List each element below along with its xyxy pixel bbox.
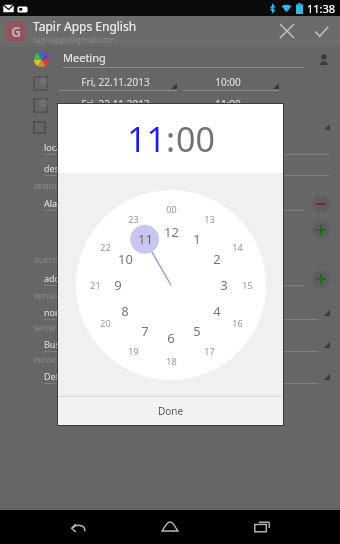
staticText: All day [57, 120, 89, 134]
staticText: GUESTS [34, 256, 60, 266]
button[interactable]: 13 [198, 208, 220, 230]
staticText: 11 [138, 230, 153, 248]
staticText: none [44, 306, 66, 318]
staticText: REMINDERS [34, 182, 74, 192]
button[interactable]: Meeting [0, 46, 340, 72]
button[interactable]: none [0, 304, 340, 322]
staticText: 19 [128, 345, 139, 357]
button[interactable]: Add guest [314, 49, 334, 69]
staticText: tapirapps@gmail.com [33, 34, 116, 45]
button[interactable]: 14 [226, 236, 248, 258]
button[interactable]: 1 [186, 228, 208, 250]
staticText: 21 [90, 279, 101, 291]
button[interactable]: 00 [160, 198, 182, 220]
staticText: 00 [176, 116, 215, 162]
staticText: 10 [118, 250, 133, 268]
staticText: 6 [167, 329, 175, 347]
button[interactable]: Fri, 22.11.2013 [59, 75, 177, 91]
button[interactable]: location [0, 138, 340, 158]
staticText: 2 [213, 250, 221, 268]
staticText: Fri, 22.11.2013 [81, 97, 150, 111]
button[interactable]: 19 [122, 340, 144, 362]
button[interactable]: Save [306, 16, 336, 46]
staticText: 15 [242, 279, 253, 291]
staticText: Busy [44, 338, 65, 350]
button[interactable]: 9 [107, 274, 129, 296]
button[interactable]: Add guest [312, 270, 330, 288]
staticText: 22 [100, 241, 111, 253]
button[interactable]: Busy [0, 336, 340, 354]
button[interactable]: 20 [94, 312, 116, 334]
staticText: Fri, 22.11.2013 [81, 75, 150, 89]
staticText: 11:38 [307, 1, 336, 16]
button[interactable]: 12 [160, 221, 182, 243]
button[interactable]: 00 [176, 116, 215, 162]
button[interactable]: All day [0, 116, 340, 138]
button[interactable]: 6 [160, 327, 182, 349]
button[interactable]: Recent apps [240, 510, 284, 544]
button[interactable]: 7 [134, 320, 156, 342]
staticText: 20 [100, 317, 111, 329]
staticText: description [44, 162, 92, 174]
staticText: 1 [193, 230, 201, 248]
button[interactable]: 4 [206, 300, 228, 322]
button[interactable]: 21 [84, 274, 106, 296]
staticText: Tapir Apps English [33, 18, 137, 34]
button[interactable]: 11 [134, 228, 156, 250]
staticText: 14 [232, 241, 243, 253]
staticText: 8 [121, 302, 129, 320]
button[interactable]: Done [58, 397, 283, 425]
button[interactable]: 23 [122, 208, 144, 230]
staticText: SHOW ME AS [34, 324, 78, 334]
button[interactable]: Add reminder [312, 221, 330, 239]
button[interactable]: 22 [94, 236, 116, 258]
button[interactable]: 11:00 [183, 97, 279, 113]
staticText: 9 [114, 276, 122, 294]
staticText: G [11, 22, 22, 41]
staticText: Default [44, 370, 75, 382]
staticText: 00 [166, 203, 177, 215]
button[interactable]: 17 [198, 340, 220, 362]
staticText: 3 [220, 276, 228, 294]
button[interactable]: 16 [226, 312, 248, 334]
staticText: 13 [204, 213, 215, 225]
button[interactable]: 18 [160, 350, 182, 372]
button[interactable]: 2 [206, 248, 228, 270]
staticText: 16 [232, 317, 243, 329]
staticText: 10:00 [215, 75, 241, 89]
button[interactable]: Fri, 22.11.2013 [59, 97, 177, 113]
button[interactable]: 3 [213, 274, 235, 296]
staticText: Alarm 10 minutes [44, 197, 119, 209]
staticText: PRIVACY [34, 356, 62, 366]
button[interactable]: Back [56, 510, 100, 544]
button[interactable]: description [0, 158, 340, 180]
button[interactable]: 11 [127, 116, 166, 162]
staticText: : [166, 116, 176, 162]
staticText: REPEAT [34, 292, 59, 302]
button[interactable]: Discard [272, 16, 302, 46]
staticText: Done [158, 404, 184, 418]
button[interactable]: Remove reminder [312, 195, 330, 213]
staticText: add guest [44, 272, 87, 284]
button[interactable]: 15 [236, 274, 258, 296]
button[interactable]: Home [148, 510, 192, 544]
button[interactable]: 5 [186, 320, 208, 342]
staticText: 11:00 [215, 97, 241, 111]
button[interactable]: 10 [114, 248, 136, 270]
button[interactable]: 10:00 [183, 75, 279, 91]
staticText: 18 [166, 355, 177, 367]
staticText: 11 [127, 116, 166, 162]
staticText: Meeting [63, 50, 106, 65]
staticText: 12 [164, 223, 179, 241]
button[interactable]: Default [0, 368, 340, 386]
staticText: 4 [213, 302, 221, 320]
button[interactable]: 8 [114, 300, 136, 322]
staticText: location [44, 141, 78, 153]
staticText: 23 [128, 213, 139, 225]
staticText: 5 [193, 322, 201, 340]
staticText: 7 [141, 322, 149, 340]
staticText: 17 [204, 345, 215, 357]
